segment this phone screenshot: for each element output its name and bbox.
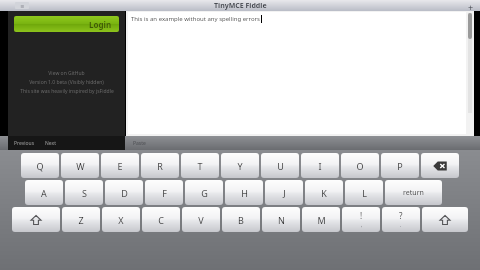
staticText: J <box>283 187 286 199</box>
button[interactable]: return <box>385 180 442 205</box>
button[interactable]: Scroll <box>468 13 472 39</box>
button[interactable]: Y <box>221 153 259 178</box>
staticText: R <box>157 160 163 172</box>
staticText: D <box>121 187 128 199</box>
staticText: E <box>117 160 123 172</box>
button[interactable]: K <box>305 180 343 205</box>
staticText: ≡ <box>20 3 25 9</box>
staticText: B <box>238 214 244 226</box>
staticText: I <box>318 160 322 172</box>
button[interactable]: F <box>145 180 183 205</box>
button[interactable]: X <box>102 207 140 232</box>
button[interactable]: W <box>61 153 99 178</box>
button[interactable]: A <box>25 180 63 205</box>
staticText: Previous <box>14 140 35 147</box>
staticText: G <box>201 187 208 199</box>
button[interactable]: L <box>345 180 383 205</box>
staticText: K <box>321 187 327 199</box>
button[interactable]: Add <box>466 1 476 10</box>
staticText: ! <box>360 210 363 221</box>
button[interactable]: View on GitHub <box>48 70 85 77</box>
button[interactable]: This is an example without any spelling … <box>128 12 466 134</box>
staticText: P <box>397 160 403 172</box>
staticText: Y <box>237 160 243 172</box>
staticText: This site was heavily inspired by jsFidd… <box>20 88 114 95</box>
button[interactable]: Shift right <box>422 207 468 232</box>
staticText: F <box>162 187 167 199</box>
button[interactable]: Hide keyboard <box>470 140 476 146</box>
staticText: TinyMCE Fiddle <box>214 1 267 11</box>
staticText: C <box>158 214 164 226</box>
button[interactable]: E <box>101 153 139 178</box>
button[interactable]: Previous <box>14 140 35 147</box>
button[interactable]: Menu <box>15 2 29 9</box>
button[interactable]: Shift <box>12 207 60 232</box>
staticText: S <box>82 187 87 199</box>
button[interactable]: Q <box>21 153 59 178</box>
button[interactable]: M <box>302 207 340 232</box>
staticText: Version 1.0 beta (Visibly hidden) <box>29 79 104 86</box>
staticText: N <box>278 214 285 226</box>
button[interactable]: D <box>105 180 143 205</box>
staticText: + <box>468 1 474 10</box>
staticText: O <box>356 160 364 172</box>
button[interactable]: T <box>181 153 219 178</box>
button[interactable]: V <box>182 207 220 232</box>
button[interactable]: P <box>381 153 419 178</box>
staticText: W <box>76 160 85 172</box>
button[interactable]: ? <box>382 207 420 232</box>
staticText: Login <box>89 19 112 30</box>
button[interactable]: S <box>65 180 103 205</box>
staticText: Q <box>36 160 44 172</box>
staticText: V <box>198 214 204 226</box>
staticText: Paste <box>133 140 146 147</box>
staticText: U <box>277 160 284 172</box>
button[interactable]: Login <box>14 16 119 32</box>
button[interactable]: J <box>265 180 303 205</box>
button[interactable]: Z <box>62 207 100 232</box>
button[interactable]: B <box>222 207 260 232</box>
staticText: , <box>361 222 363 229</box>
staticText: return <box>403 188 424 198</box>
staticText: A <box>41 187 47 199</box>
staticText: T <box>197 160 203 172</box>
button[interactable]: R <box>141 153 179 178</box>
staticText: M <box>317 214 326 226</box>
button[interactable]: G <box>185 180 223 205</box>
button[interactable]: Paste <box>133 140 146 147</box>
button[interactable]: Next <box>45 140 56 147</box>
staticText: ? <box>399 210 403 221</box>
staticText: H <box>241 187 248 199</box>
button[interactable]: Backspace <box>421 153 459 178</box>
button[interactable]: O <box>341 153 379 178</box>
button[interactable]: ! <box>342 207 380 232</box>
button[interactable]: H <box>225 180 263 205</box>
staticText: This is an example without any spelling … <box>131 15 260 23</box>
button[interactable]: N <box>262 207 300 232</box>
staticText: Next <box>45 140 56 147</box>
button[interactable]: U <box>261 153 299 178</box>
staticText: L <box>362 187 367 199</box>
staticText: X <box>118 214 124 226</box>
button[interactable]: I <box>301 153 339 178</box>
button[interactable]: C <box>142 207 180 232</box>
staticText: Z <box>78 214 84 226</box>
staticText: . <box>400 222 402 229</box>
